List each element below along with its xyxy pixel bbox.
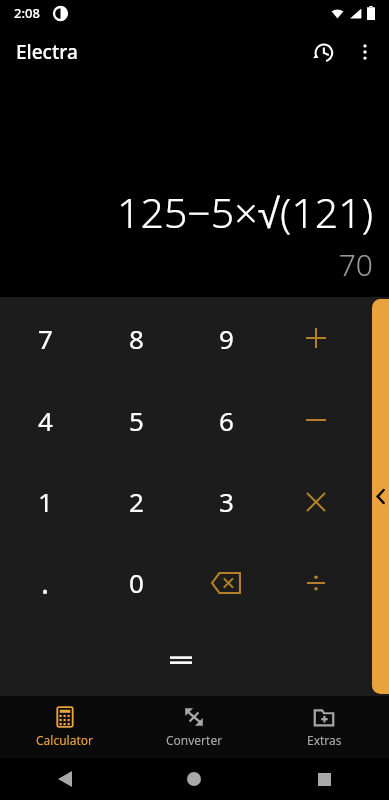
- button[interactable]: [271, 297, 361, 379]
- button[interactable]: .: [0, 542, 91, 623]
- button[interactable]: 3: [181, 461, 271, 542]
- button[interactable]: 5: [91, 379, 181, 461]
- staticText: 0: [129, 565, 144, 600]
- button[interactable]: 6: [181, 379, 271, 461]
- button[interactable]: 0: [91, 542, 181, 623]
- staticText: .: [41, 562, 50, 603]
- button[interactable]: 9: [181, 297, 271, 379]
- button[interactable]: Extras: [259, 696, 389, 758]
- button[interactable]: 7: [0, 297, 91, 379]
- staticText: 70: [338, 244, 373, 285]
- button[interactable]: Recent apps: [259, 758, 389, 800]
- button[interactable]: Home: [129, 758, 259, 800]
- staticText: 5: [129, 403, 144, 438]
- button[interactable]: More options: [345, 32, 385, 72]
- staticText: 3: [219, 484, 234, 519]
- button[interactable]: Equals: [138, 623, 224, 696]
- button[interactable]: History: [301, 30, 345, 74]
- staticText: 6: [219, 403, 234, 438]
- button[interactable]: 2: [91, 461, 181, 542]
- button[interactable]: Calculator: [0, 696, 129, 758]
- button[interactable]: 4: [0, 379, 91, 461]
- staticText: 2:08: [14, 4, 40, 22]
- button[interactable]: [271, 379, 361, 461]
- staticText: Calculator: [36, 732, 93, 748]
- staticText: 1: [38, 484, 53, 519]
- staticText: 9: [219, 321, 234, 356]
- button[interactable]: Back: [0, 758, 129, 800]
- button[interactable]: 1: [0, 461, 91, 542]
- button[interactable]: Converter: [129, 696, 259, 758]
- staticText: Converter: [166, 732, 223, 748]
- staticText: 4: [38, 403, 53, 438]
- button[interactable]: Open scientific keypad: [372, 299, 389, 694]
- staticText: Electra: [16, 39, 78, 65]
- staticText: 125−5×√(121): [117, 184, 373, 240]
- staticText: 8: [129, 321, 144, 356]
- button[interactable]: Backspace: [181, 542, 271, 623]
- staticText: 2: [129, 484, 144, 519]
- button[interactable]: 8: [91, 297, 181, 379]
- staticText: 7: [38, 321, 53, 356]
- button[interactable]: [271, 542, 361, 623]
- staticText: Extras: [307, 732, 342, 748]
- button[interactable]: [271, 461, 361, 542]
